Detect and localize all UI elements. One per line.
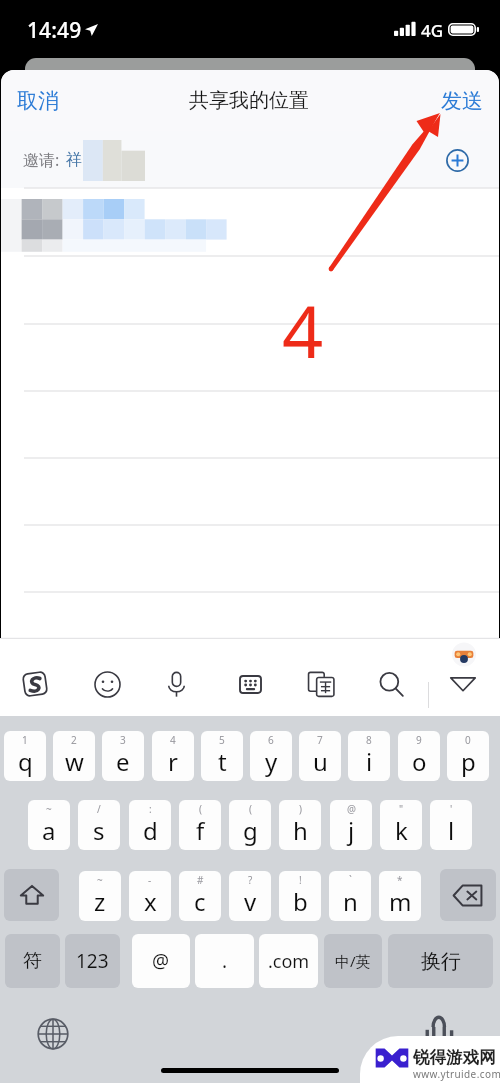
- staticText: 2: [71, 733, 77, 747]
- staticText: a: [42, 814, 56, 847]
- button[interactable]: :: [129, 800, 171, 850]
- staticText: y: [265, 745, 278, 778]
- button[interactable]: -: [129, 871, 171, 921]
- staticText: 共享我的位置: [189, 88, 309, 113]
- staticText: m: [389, 885, 412, 918]
- staticText: :: [149, 802, 152, 816]
- staticText: t: [218, 745, 227, 778]
- button[interactable]: 0: [447, 731, 489, 781]
- button[interactable]: Backspace: [440, 869, 496, 921]
- button[interactable]: Shift: [4, 869, 59, 921]
- button[interactable]: 2: [53, 731, 95, 781]
- button[interactable]: 8: [348, 731, 390, 781]
- staticText: ): [299, 802, 302, 816]
- button[interactable]: 7: [299, 731, 341, 781]
- staticText: b: [293, 885, 308, 918]
- button[interactable]: ~: [28, 800, 70, 850]
- button[interactable]: 6: [250, 731, 292, 781]
- staticText: (: [249, 802, 252, 816]
- staticText: r: [168, 745, 178, 778]
- button[interactable]: 取消: [9, 80, 67, 122]
- button[interactable]: Hide keyboard: [433, 660, 493, 708]
- staticText: ?: [248, 873, 253, 887]
- staticText: (: [199, 802, 202, 816]
- button[interactable]: Voice input: [146, 660, 206, 708]
- staticText: z: [94, 885, 106, 918]
- button[interactable]: Add contact: [441, 144, 473, 176]
- staticText: 换行: [421, 949, 461, 974]
- staticText: 123: [76, 948, 109, 974]
- staticText: c: [194, 885, 206, 918]
- staticText: k: [395, 814, 408, 847]
- staticText: 8: [366, 733, 372, 747]
- staticText: .com: [268, 949, 310, 974]
- staticText: 发送: [441, 88, 483, 114]
- button[interactable]: !: [279, 871, 321, 921]
- button[interactable]: @: [330, 800, 372, 850]
- staticText: 4: [170, 733, 176, 747]
- staticText: l: [448, 814, 455, 847]
- button[interactable]: 发送: [433, 80, 491, 122]
- button[interactable]: ~: [79, 871, 121, 921]
- button[interactable]: ": [380, 800, 422, 850]
- button[interactable]: (: [229, 800, 271, 850]
- button[interactable]: .com: [259, 934, 318, 988]
- staticText: 祥: [66, 150, 82, 170]
- staticText: u: [313, 745, 328, 778]
- staticText: e: [116, 745, 130, 778]
- staticText: q: [18, 745, 33, 778]
- button[interactable]: 4: [152, 731, 194, 781]
- button[interactable]: 1: [4, 731, 46, 781]
- staticText: g: [243, 814, 258, 847]
- button[interactable]: 换行: [388, 934, 493, 988]
- button[interactable]: 5: [201, 731, 243, 781]
- staticText: 1: [22, 733, 28, 747]
- staticText: 5: [219, 733, 225, 747]
- staticText: p: [461, 745, 476, 778]
- staticText: 4G: [421, 19, 444, 42]
- button[interactable]: 9: [398, 731, 440, 781]
- staticText: ': [450, 802, 453, 816]
- button[interactable]: Search: [361, 660, 421, 708]
- button[interactable]: Keyboard layout: [220, 660, 280, 708]
- staticText: www.ytruide.com: [413, 1067, 500, 1081]
- staticText: @: [347, 802, 356, 816]
- button[interactable]: Emoji: [77, 660, 137, 708]
- button[interactable]: `: [329, 871, 371, 921]
- button[interactable]: 符: [5, 934, 60, 988]
- button[interactable]: 123: [65, 934, 120, 988]
- staticText: 符: [23, 949, 42, 973]
- staticText: n: [343, 885, 358, 918]
- staticText: w: [65, 745, 84, 778]
- button[interactable]: /: [78, 800, 120, 850]
- staticText: #: [197, 873, 204, 887]
- staticText: *: [397, 873, 403, 887]
- button[interactable]: Switch language: [36, 1017, 70, 1051]
- button[interactable]: ): [279, 800, 321, 850]
- button[interactable]: ': [430, 800, 472, 850]
- button[interactable]: @: [132, 934, 190, 988]
- button[interactable]: *: [379, 871, 421, 921]
- staticText: ~: [97, 873, 103, 887]
- button[interactable]: (: [179, 800, 221, 850]
- button[interactable]: Sogou input: [5, 660, 65, 708]
- staticText: 7: [317, 733, 323, 747]
- staticText: !: [299, 873, 302, 887]
- button[interactable]: 中/英: [324, 934, 382, 988]
- button[interactable]: 3: [102, 731, 144, 781]
- staticText: v: [244, 885, 257, 918]
- button[interactable]: Translate: [291, 660, 351, 708]
- staticText: 锐得游戏网: [413, 1047, 496, 1068]
- button[interactable]: .: [195, 934, 254, 988]
- staticText: s: [93, 814, 105, 847]
- button[interactable]: ?: [229, 871, 271, 921]
- staticText: 3: [120, 733, 126, 747]
- staticText: 4: [282, 281, 324, 379]
- staticText: 14:49: [27, 16, 82, 45]
- staticText: 取消: [17, 88, 59, 114]
- button[interactable]: #: [179, 871, 221, 921]
- staticText: -: [148, 873, 152, 887]
- staticText: `: [349, 873, 352, 887]
- staticText: i: [366, 745, 373, 778]
- staticText: 邀请:: [23, 149, 60, 171]
